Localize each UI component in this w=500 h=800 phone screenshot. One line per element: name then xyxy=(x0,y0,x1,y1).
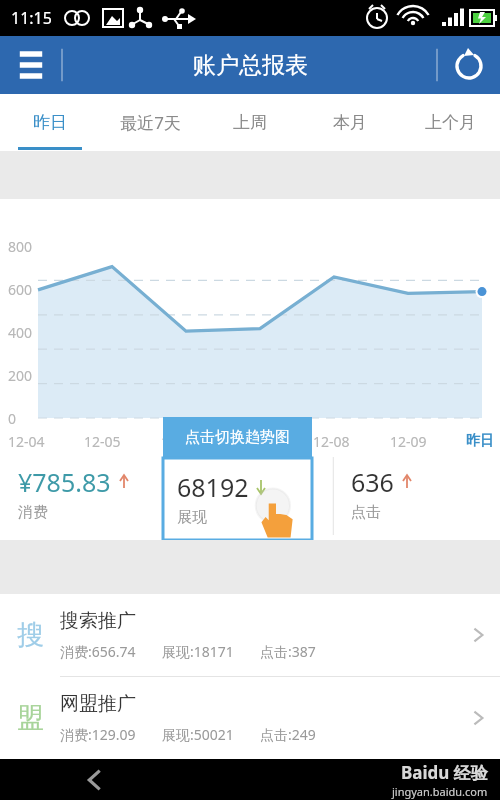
button[interactable]: 636 xyxy=(333,451,500,540)
staticText: 消费 xyxy=(18,503,48,522)
staticText: 展现:18171 xyxy=(162,642,234,661)
staticText: 点击:249 xyxy=(260,725,316,744)
staticText: 上个月 xyxy=(425,112,476,133)
staticText: 账户总报表 xyxy=(193,51,308,80)
staticText: 展现 xyxy=(177,508,207,527)
staticText: 点击切换趋势图 xyxy=(185,428,290,447)
staticText: 盟 xyxy=(17,701,44,735)
staticText: 搜索推广 xyxy=(60,609,136,633)
button[interactable]: Menu xyxy=(0,36,62,94)
staticText: 搜 xyxy=(17,618,44,652)
button[interactable]: 搜 xyxy=(0,594,500,676)
staticText: 12-05 xyxy=(84,432,121,451)
button[interactable]: 盟 xyxy=(0,677,500,759)
button[interactable]: Refresh xyxy=(437,36,500,94)
staticText: 800 xyxy=(8,237,33,256)
staticText: 最近7天 xyxy=(120,111,181,134)
staticText: 消费:656.74 xyxy=(60,642,136,661)
staticText: 12-06 xyxy=(161,432,198,451)
staticText: 昨日 xyxy=(33,112,67,133)
staticText: 12-08 xyxy=(313,432,350,451)
button[interactable]: 最近7天 xyxy=(100,94,200,151)
button[interactable]: 本月 xyxy=(300,94,400,151)
button[interactable]: 上个月 xyxy=(400,94,500,151)
staticText: 200 xyxy=(8,366,33,385)
button[interactable]: ¥785.83 xyxy=(0,451,166,540)
staticText: 本月 xyxy=(333,112,367,133)
other: Open 网盟推广 xyxy=(456,677,500,759)
other: Open 搜索推广 xyxy=(456,594,500,676)
staticText: 12-07 xyxy=(237,432,274,451)
staticText: 68192 xyxy=(177,470,249,504)
button[interactable]: 点击切换趋势图 xyxy=(163,417,312,540)
button[interactable]: 昨日 xyxy=(0,94,100,151)
staticText: 12-09 xyxy=(390,432,427,451)
staticText: 网盟推广 xyxy=(60,692,136,716)
staticText: 600 xyxy=(8,280,33,299)
staticText: 636 xyxy=(351,465,394,499)
staticText: 12-04 xyxy=(8,432,45,451)
staticText: 点击 xyxy=(351,503,381,522)
button[interactable]: 上周 xyxy=(200,94,300,151)
staticText: 0 xyxy=(8,409,17,428)
staticText: Baidu 经验 xyxy=(401,761,488,784)
staticText: 消费:129.09 xyxy=(60,725,136,744)
staticText: jingyan.baidu.com xyxy=(392,784,488,799)
staticText: 展现:50021 xyxy=(162,725,234,744)
staticText: 上周 xyxy=(233,112,267,133)
button[interactable]: Back xyxy=(70,759,120,800)
staticText: 11:15 xyxy=(11,7,52,29)
staticText: 昨日 xyxy=(466,432,494,450)
staticText: 点击:387 xyxy=(260,642,316,661)
staticText: ¥785.83 xyxy=(18,465,111,499)
staticText: 400 xyxy=(8,323,33,342)
